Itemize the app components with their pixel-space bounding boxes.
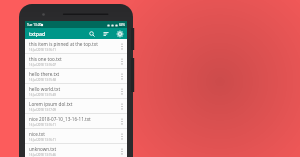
button[interactable]: nice.txt bbox=[25, 129, 127, 144]
staticText: Tue 13:20 bbox=[27, 23, 42, 27]
button[interactable]: More options bbox=[117, 54, 127, 68]
staticText: this one too.txt bbox=[29, 56, 62, 62]
staticText: hello there.txt bbox=[29, 71, 60, 77]
button[interactable]: hello there.txt bbox=[25, 69, 127, 84]
staticText: Lorem ipsum dol.txt bbox=[29, 101, 73, 107]
button[interactable]: More options bbox=[117, 84, 127, 98]
staticText: 16 Jul 2018 13:17:09 bbox=[29, 108, 56, 112]
button[interactable]: Sort bbox=[101, 29, 110, 38]
staticText: hello world.txt bbox=[29, 86, 61, 92]
button[interactable]: Settings bbox=[115, 29, 124, 38]
staticText: 16 Jul 2018 13:15:58 bbox=[29, 78, 56, 82]
button[interactable]: More options bbox=[117, 129, 127, 143]
button[interactable]: nice 2018-07-10_13-16-11.txt bbox=[25, 114, 127, 129]
staticText: this item is pinned at the top.txt bbox=[29, 41, 98, 47]
staticText: nice.txt bbox=[29, 131, 45, 137]
button[interactable]: unknown.txt bbox=[25, 144, 127, 157]
button[interactable]: hello world.txt bbox=[25, 84, 127, 99]
staticText: unknown.txt bbox=[29, 146, 57, 152]
button[interactable]: More options bbox=[117, 39, 127, 53]
button[interactable]: More options bbox=[117, 69, 127, 83]
button[interactable]: More options bbox=[117, 99, 127, 113]
button[interactable]: this item is pinned at the top.txt bbox=[25, 39, 127, 54]
staticText: 16 Jul 2018 13:16:07 bbox=[29, 63, 56, 67]
staticText: 16 Jul 2018 13:15:46 bbox=[29, 153, 56, 157]
staticText: nice 2018-07-10_13-16-11.txt bbox=[29, 116, 91, 122]
staticText: 16 Jul 2018 13:16:11 bbox=[29, 123, 56, 127]
staticText: 16 Jul 2018 13:15:49 bbox=[29, 93, 56, 97]
button[interactable]: Lorem ipsum dol.txt bbox=[25, 99, 127, 114]
button[interactable]: More options bbox=[117, 144, 127, 157]
button[interactable]: Search bbox=[87, 29, 96, 38]
staticText: 16 Jul 2018 13:16:11 bbox=[29, 48, 56, 52]
staticText: txtpad bbox=[29, 30, 46, 37]
button[interactable]: this one too.txt bbox=[25, 54, 127, 69]
staticText: 84% bbox=[119, 23, 125, 27]
staticText: 16 Jul 2018 13:16:11 bbox=[29, 138, 56, 142]
button[interactable]: More options bbox=[117, 114, 127, 128]
